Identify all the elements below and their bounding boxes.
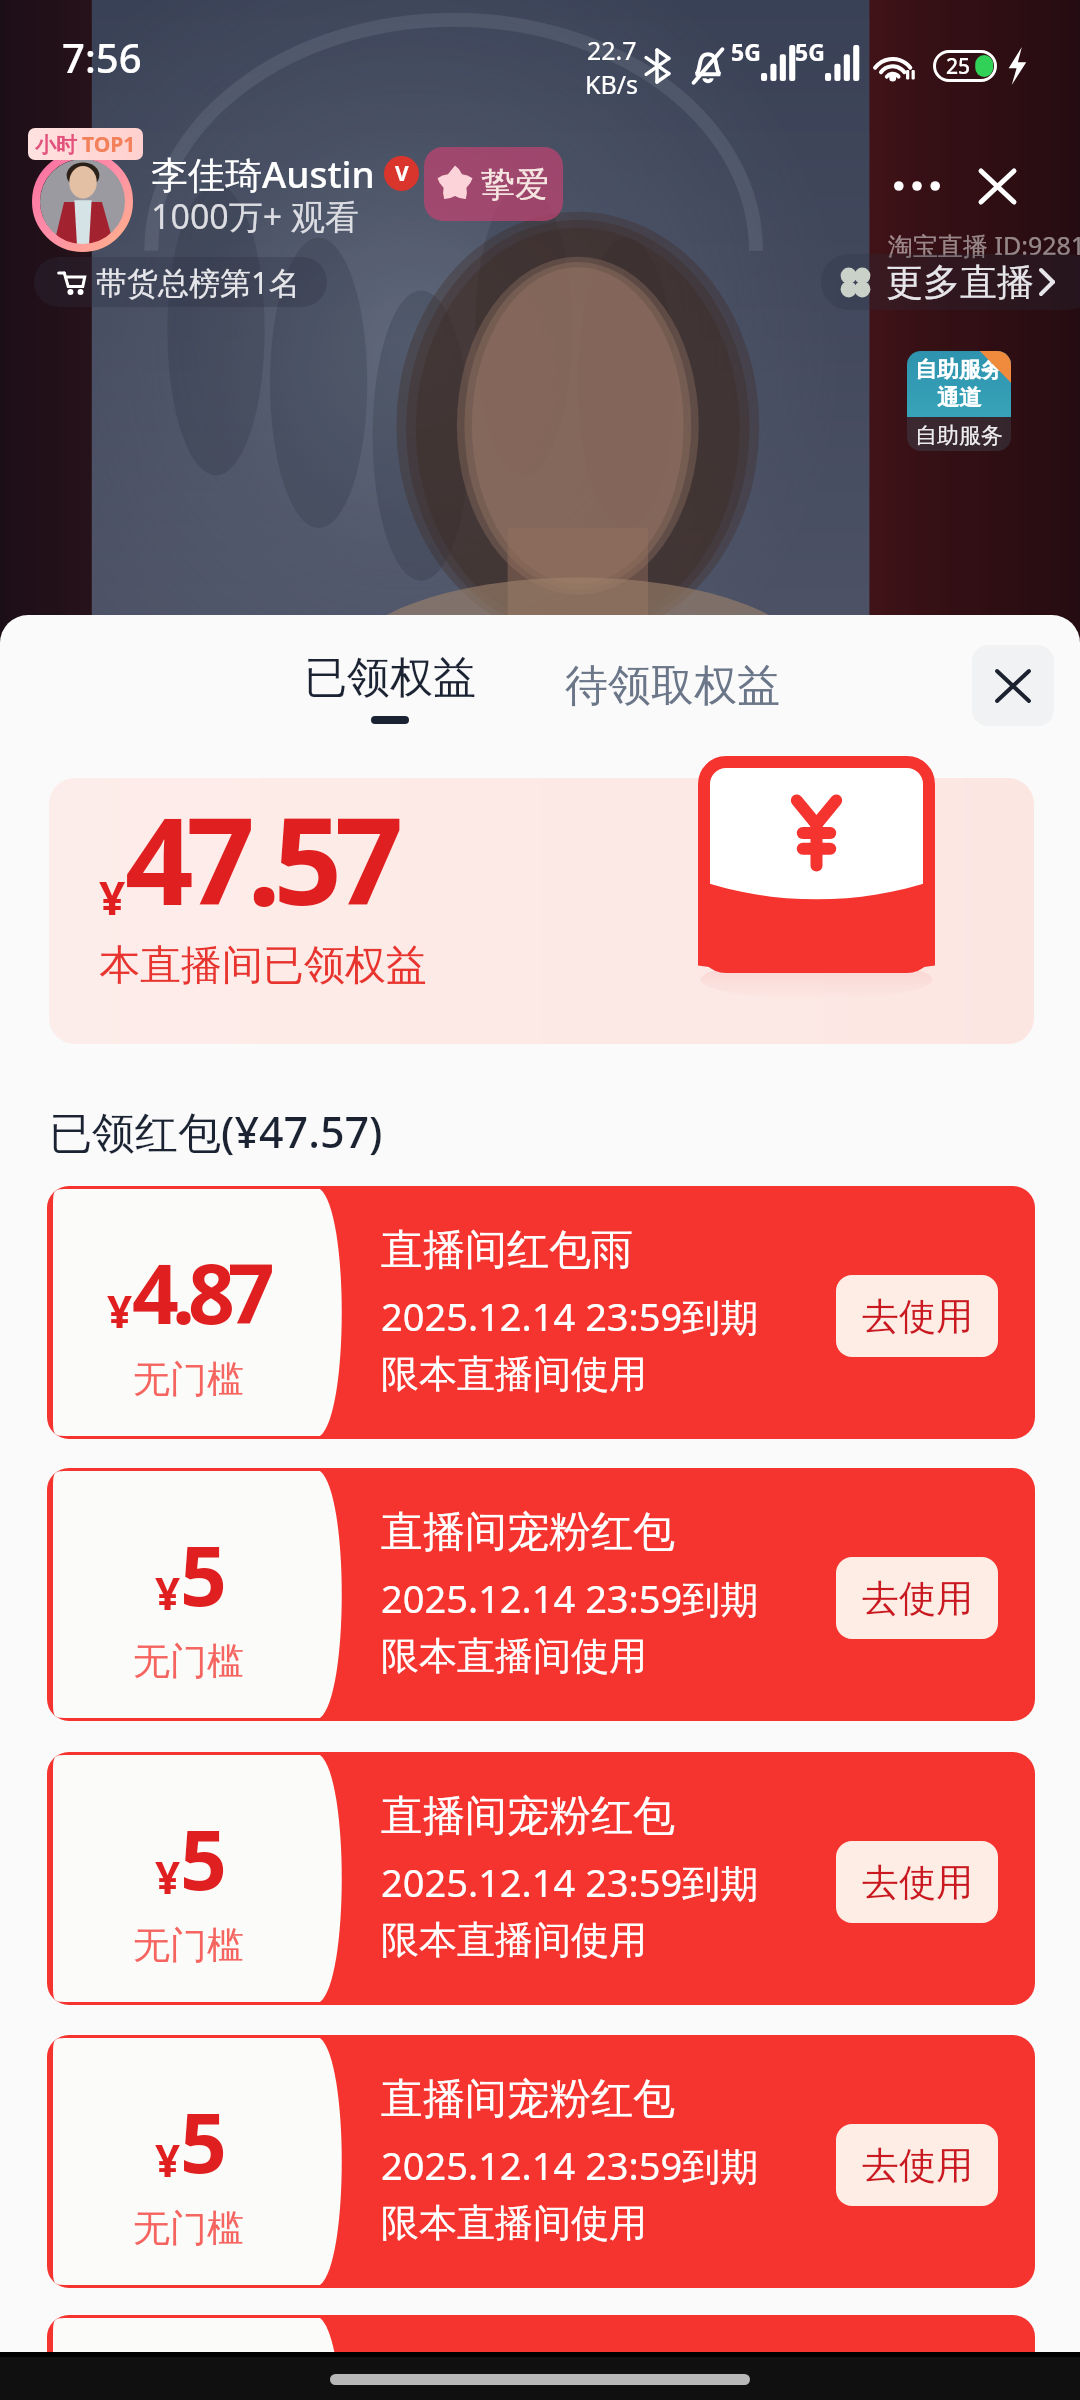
staticText: 通道 xyxy=(937,384,981,412)
button[interactable]: ¥ xyxy=(47,1186,1035,1439)
button[interactable]: 去使用 xyxy=(836,1275,998,1357)
staticText: 李佳琦Austin xyxy=(151,148,375,199)
button[interactable]: ¥ xyxy=(47,2035,1035,2288)
staticText: 47.57 xyxy=(125,777,396,940)
staticText: 带货总榜第1名 xyxy=(96,261,300,303)
button[interactable]: More options xyxy=(876,145,958,227)
staticText: 限本直播间使用 xyxy=(381,1632,647,1680)
staticText: 待领取权益 xyxy=(565,659,780,713)
staticText: 去使用 xyxy=(862,1859,973,1906)
staticText: 限本直播间使用 xyxy=(381,2199,647,2247)
staticText: 2025.12.14 23:59到期 xyxy=(381,2139,759,2191)
staticText: ¥ xyxy=(155,1847,181,1907)
button[interactable]: Streamer avatar xyxy=(32,151,133,252)
button[interactable]: 李佳琦Austin xyxy=(151,148,419,199)
staticText: 2025.12.14 23:59到期 xyxy=(381,1290,759,1342)
button[interactable]: 待领取权益 xyxy=(553,651,792,721)
button[interactable]: 挚爱 xyxy=(424,147,563,221)
button[interactable]: Close live xyxy=(956,145,1038,227)
staticText: ¥ xyxy=(107,1281,133,1341)
button[interactable]: 带货总榜第1名 xyxy=(34,257,327,307)
staticText: 去使用 xyxy=(862,1293,973,1340)
staticText: 5 xyxy=(180,1518,220,1630)
staticText: 去使用 xyxy=(862,2142,973,2189)
staticText: 自助服务 xyxy=(915,356,1003,384)
button[interactable]: Close xyxy=(972,645,1054,726)
staticText: 自助服务 xyxy=(915,422,1003,450)
button[interactable]: 去使用 xyxy=(836,2124,998,2206)
button[interactable]: 去使用 xyxy=(836,1841,998,1923)
button[interactable]: ¥ xyxy=(47,1468,1035,1721)
staticText: KB/s xyxy=(585,67,639,101)
button[interactable]: 自助服务 xyxy=(907,351,1011,451)
button[interactable]: ¥ xyxy=(47,1752,1035,2005)
staticText: 本直播间已领权益 xyxy=(99,940,427,992)
staticText: 无门槛 xyxy=(133,1356,244,1403)
staticText: 5 xyxy=(180,1802,220,1914)
staticText: 无门槛 xyxy=(133,1922,244,1969)
button[interactable]: 去使用 xyxy=(836,1557,998,1639)
staticText: ¥ xyxy=(99,866,126,929)
staticText: 去使用 xyxy=(862,1575,973,1622)
button[interactable] xyxy=(49,778,1034,1044)
staticText: V xyxy=(395,159,409,188)
staticText: 直播间宠粉红包 xyxy=(381,1506,675,1559)
staticText: ¥ xyxy=(155,1563,181,1623)
staticText: 小时 xyxy=(35,132,77,158)
staticText: 已领权益 xyxy=(304,651,476,705)
staticText: TOP1 xyxy=(82,130,136,159)
staticText: 无门槛 xyxy=(133,2205,244,2252)
staticText: 淘宝直播 ID:92817 xyxy=(888,228,1080,262)
button[interactable]: 已领权益 xyxy=(292,643,488,732)
staticText: 更多直播 xyxy=(886,259,1034,306)
staticText: 5 xyxy=(180,2085,220,2197)
staticText: 无门槛 xyxy=(133,1638,244,1685)
staticText: 1000万+ 观看 xyxy=(151,193,360,239)
staticText: 22.7 xyxy=(587,33,637,67)
staticText: 直播间红包雨 xyxy=(381,1224,633,1277)
staticText: 2025.12.14 23:59到期 xyxy=(381,1856,759,1908)
button[interactable]: ¥ xyxy=(47,2315,1035,2352)
staticText: 已领红包(¥47.57) xyxy=(49,1102,383,1161)
staticText: 直播间宠粉红包 xyxy=(381,1790,675,1843)
staticText: 限本直播间使用 xyxy=(381,1916,647,1964)
button[interactable]: 更多直播 xyxy=(821,254,1080,310)
staticText: 7:56 xyxy=(62,30,142,84)
staticText: 2025.12.14 23:59到期 xyxy=(381,1572,759,1624)
staticText: 挚爱 xyxy=(481,163,549,206)
staticText: 直播间宠粉红包 xyxy=(381,2073,675,2126)
staticText: 25 xyxy=(946,52,971,81)
staticText: 5G xyxy=(795,36,825,67)
staticText: 5G xyxy=(731,36,761,67)
staticText: ¥ xyxy=(155,2130,181,2190)
staticText: 限本直播间使用 xyxy=(381,1350,647,1398)
staticText: 4.87 xyxy=(132,1236,268,1348)
